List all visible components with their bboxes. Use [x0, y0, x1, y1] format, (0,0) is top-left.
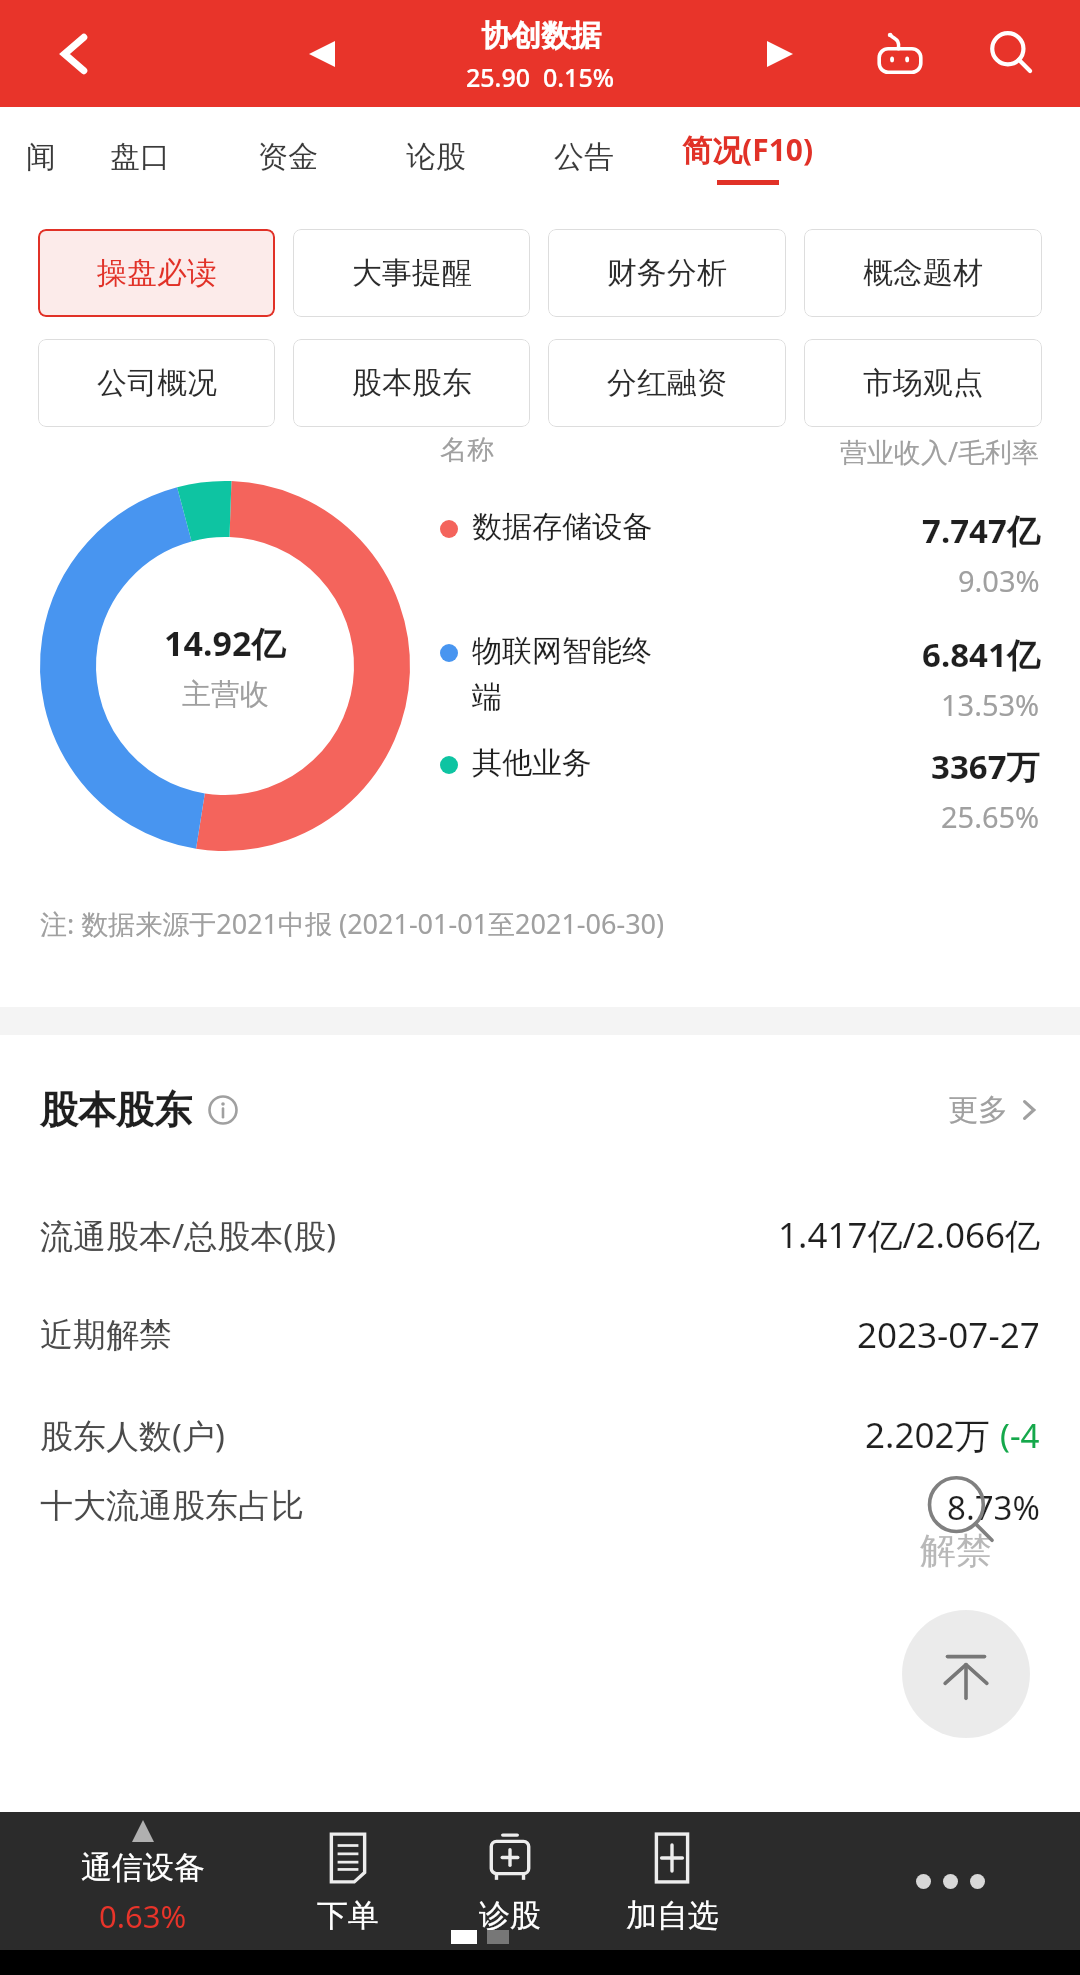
staticText: 通信设备 — [81, 1848, 205, 1887]
staticText: 公告 — [554, 138, 614, 176]
staticText: 2023-07-27 — [857, 1311, 1040, 1359]
staticText: 资金 — [258, 138, 318, 176]
staticText: 市场观点 — [863, 364, 983, 402]
staticText: 7.747亿 — [922, 508, 1040, 553]
button[interactable]: 论股 — [406, 107, 466, 207]
staticText: 大事提醒 — [352, 254, 472, 292]
staticText: 财务分析 — [607, 254, 727, 292]
staticText: 8.73% — [947, 1485, 1040, 1530]
staticText: 论股 — [406, 138, 466, 176]
button[interactable]: 公司概况 — [38, 339, 275, 427]
staticText: (-4 — [1000, 1413, 1040, 1458]
button[interactable]: 资金 — [258, 107, 318, 207]
button[interactable]: Next stock — [748, 22, 812, 86]
staticText: 加自选 — [626, 1896, 719, 1935]
button[interactable]: 大事提醒 — [293, 229, 530, 317]
staticText: 解禁 — [920, 1528, 992, 1573]
staticText: 主营收 — [182, 676, 269, 713]
button[interactable]: 股东人数(户) — [40, 1385, 1040, 1485]
staticText: 1.417亿/2.066亿 — [778, 1211, 1040, 1259]
staticText: 2.202万 — [865, 1411, 990, 1459]
staticText: 13.53% — [941, 685, 1040, 724]
button[interactable]: Search 解禁 — [918, 1472, 1014, 1568]
button[interactable]: 概念题材 — [804, 229, 1042, 317]
staticText: 14.92亿 — [164, 620, 286, 666]
button[interactable]: 通信设备 — [28, 1812, 258, 1950]
button[interactable]: 更多 — [948, 1091, 1040, 1129]
button[interactable]: 物联网智能终 端 — [440, 632, 1040, 724]
staticText: 股东人数(户) — [40, 1413, 225, 1458]
staticText: 概念题材 — [863, 254, 983, 292]
staticText: 6.841亿 — [922, 632, 1040, 677]
staticText: 股本股东 — [352, 364, 472, 402]
button[interactable]: 其他业务 — [440, 744, 1040, 836]
staticText: 更多 — [948, 1091, 1008, 1129]
staticText: 0.63% — [99, 1895, 187, 1937]
button[interactable]: 流通股本/总股本(股) — [40, 1185, 1040, 1285]
staticText: 25.90 0.15% — [466, 60, 615, 94]
staticText: 诊股 — [479, 1896, 541, 1935]
button[interactable]: 加自选 — [592, 1812, 752, 1950]
button[interactable]: 公告 — [554, 107, 614, 207]
button[interactable]: 财务分析 — [548, 229, 786, 317]
staticText: 十大流通股东占比 — [40, 1485, 304, 1527]
staticText: 3367万 — [931, 744, 1040, 789]
staticText: 9.03% — [958, 561, 1040, 600]
staticText: 注: 数据来源于2021中报 (2021-01-01至2021-06-30) — [40, 905, 665, 942]
staticText: 营业收入/毛利率 — [840, 433, 1040, 470]
staticText: 操盘必读 — [97, 254, 217, 292]
staticText: 盘口 — [110, 138, 170, 176]
staticText: 下单 — [317, 1896, 379, 1935]
button[interactable]: 闻 — [26, 107, 56, 207]
button[interactable]: Back — [40, 19, 110, 89]
button[interactable]: Info — [206, 1093, 240, 1127]
staticText: 其他业务 — [472, 744, 762, 782]
button[interactable]: 下单 — [268, 1812, 428, 1950]
button[interactable]: 股本股东 — [293, 339, 530, 427]
staticText: 物联网智能终 端 — [472, 632, 762, 716]
button[interactable]: More options — [850, 1812, 1050, 1950]
button[interactable]: 分红融资 — [548, 339, 786, 427]
button[interactable]: 简况(F10) — [682, 107, 814, 207]
button[interactable]: 盘口 — [110, 107, 170, 207]
staticText: 简况(F10) — [682, 129, 814, 170]
button[interactable]: 近期解禁 — [40, 1285, 1040, 1385]
button[interactable]: 市场观点 — [804, 339, 1042, 427]
button[interactable]: 数据存储设备 — [440, 508, 1040, 600]
staticText: 名称 — [440, 433, 494, 467]
button[interactable]: 操盘必读 — [38, 229, 275, 317]
staticText: 流通股本/总股本(股) — [40, 1213, 337, 1258]
staticText: 数据存储设备 — [472, 508, 762, 546]
button[interactable]: 诊股 — [430, 1812, 590, 1950]
button[interactable]: AI assistant — [860, 14, 940, 94]
button[interactable]: Previous stock — [290, 22, 354, 86]
button[interactable]: Search — [972, 14, 1052, 94]
staticText: 分红融资 — [607, 364, 727, 402]
staticText: 闻 — [26, 138, 56, 176]
staticText: 公司概况 — [97, 364, 217, 402]
staticText: 股本股东 — [40, 1086, 192, 1134]
staticText: 25.65% — [941, 797, 1040, 836]
staticText: 协创数据 — [481, 17, 601, 55]
button[interactable]: Scroll to top — [902, 1610, 1030, 1738]
staticText: 近期解禁 — [40, 1314, 172, 1356]
